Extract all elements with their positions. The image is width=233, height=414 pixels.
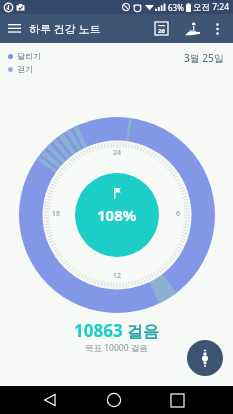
button[interactable]: Back	[36, 386, 64, 414]
button[interactable]: More	[208, 14, 226, 43]
staticText: 달리기	[17, 51, 41, 61]
button[interactable]: Home	[100, 386, 128, 414]
button[interactable]: Calendar	[146, 14, 177, 43]
staticText: 하루 건강 노트	[29, 21, 101, 36]
staticText: 오전 7:24	[193, 1, 230, 13]
button[interactable]: Location	[177, 14, 208, 43]
button[interactable]: More options	[187, 340, 223, 376]
staticText: 걸음	[127, 322, 159, 342]
staticText: 63%	[168, 2, 184, 13]
button[interactable]: Menu	[0, 14, 29, 43]
staticText: 108%	[97, 205, 137, 225]
staticText: 목표 10000 걸음	[85, 342, 148, 354]
button[interactable]: Recents	[163, 386, 191, 414]
staticText: 걷기	[17, 64, 33, 74]
staticText: 18	[52, 209, 61, 219]
staticText: 26	[158, 27, 165, 35]
staticText: 3월 25일	[184, 51, 224, 65]
staticText: 6	[176, 209, 181, 219]
staticText: 10863	[74, 319, 123, 342]
staticText: 24	[113, 148, 122, 158]
staticText: 12	[113, 271, 122, 281]
